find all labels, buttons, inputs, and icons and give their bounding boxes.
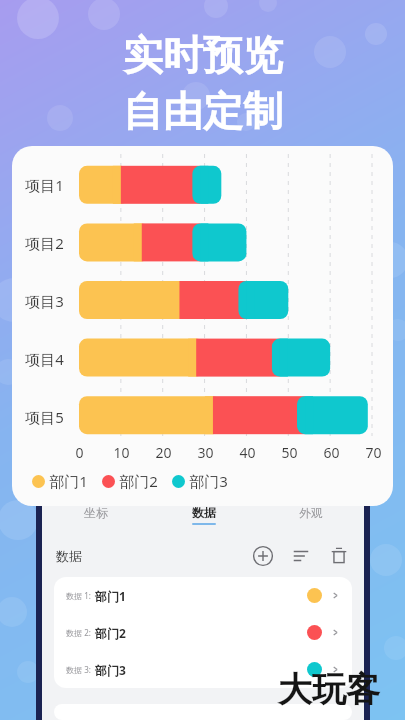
button[interactable]: 外观 [257, 505, 364, 531]
staticText: 部门1 [95, 588, 126, 604]
button[interactable]: Sort [290, 545, 312, 567]
button[interactable]: 数据 1: [54, 577, 352, 614]
staticText: 部门3 [189, 471, 228, 491]
button[interactable]: Add data [252, 545, 274, 567]
staticText: 实时预览 [123, 30, 283, 80]
button[interactable]: 坐标 [42, 505, 150, 531]
button[interactable]: 部门2 [102, 471, 158, 491]
staticText: 数据 3: [66, 664, 91, 675]
staticText: 30 [197, 443, 214, 462]
staticText: 数据 [56, 548, 82, 564]
staticText: 数据 2: [66, 627, 91, 638]
button[interactable]: 部门1 [32, 471, 88, 491]
staticText: 项目3 [25, 291, 64, 311]
staticText: 部门2 [95, 625, 126, 641]
button[interactable]: 数据 3: [54, 651, 352, 688]
staticText: 10 [113, 443, 130, 462]
staticText: 60 [323, 443, 340, 462]
staticText: 项目1 [25, 175, 64, 195]
staticText: 70 [365, 443, 382, 462]
staticText: 部门2 [119, 471, 158, 491]
staticText: 数据 1: [66, 590, 91, 601]
staticText: 0 [75, 443, 84, 462]
staticText: 50 [281, 443, 298, 462]
staticText: 项目5 [25, 407, 64, 427]
button[interactable]: Delete [328, 545, 350, 567]
staticText: 自由定制 [123, 86, 283, 136]
button[interactable]: 部门3 [172, 471, 228, 491]
staticText: 部门3 [95, 662, 126, 678]
staticText: 外观 [299, 505, 323, 520]
staticText: 项目2 [25, 233, 64, 253]
staticText: 大玩客 [278, 668, 380, 711]
staticText: 40 [239, 443, 256, 462]
button[interactable]: 数据 [150, 505, 257, 531]
button[interactable]: 数据 2: [54, 614, 352, 651]
staticText: 部门1 [49, 471, 88, 491]
staticText: 坐标 [84, 505, 108, 520]
staticText: 项目4 [25, 349, 64, 369]
staticText: 20 [155, 443, 172, 462]
staticText: 数据 [192, 505, 216, 520]
